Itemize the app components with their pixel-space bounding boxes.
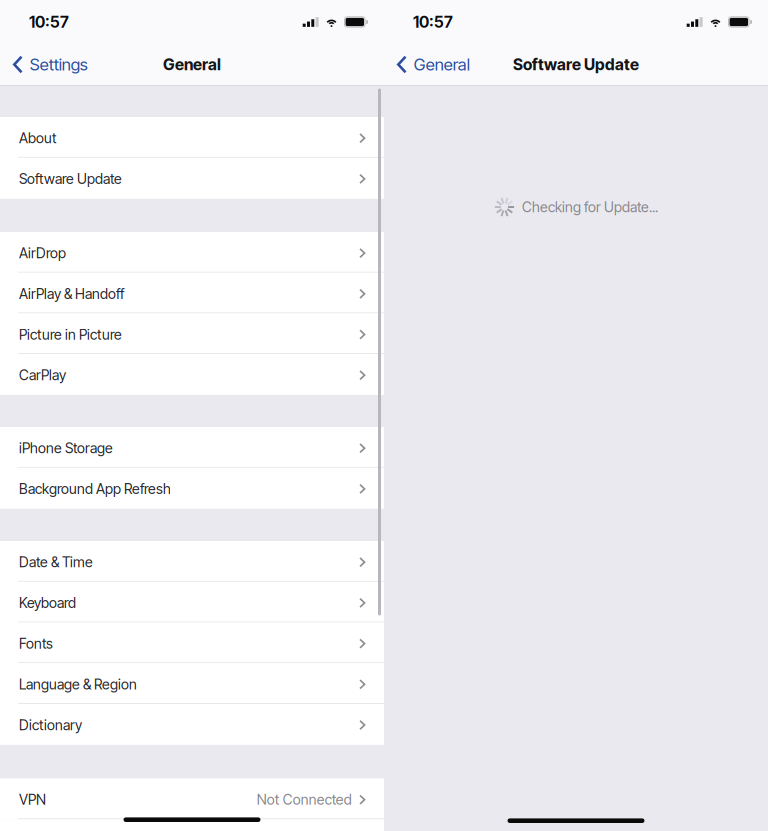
button[interactable]: VPN [0,779,384,819]
button[interactable]: Fonts [0,622,384,663]
button[interactable]: General [384,44,480,85]
staticText: AirPlay & Handoff [19,285,124,302]
staticText: Software Update [19,170,122,187]
staticText: Picture in Picture [19,326,122,343]
staticText: Background App Refresh [19,480,171,497]
button[interactable]: Background App Refresh [0,468,384,508]
staticText: 10:57 [413,12,453,32]
staticText: AirDrop [19,244,66,262]
staticText: Checking for Update... [522,198,658,215]
staticText: Language & Region [19,676,137,693]
staticText: Keyboard [19,594,76,611]
staticText: About [19,130,57,147]
staticText: VPN [19,791,46,808]
button[interactable]: Date & Time [0,541,384,582]
staticText: iPhone Storage [19,440,113,457]
staticText: Fonts [19,635,53,652]
button[interactable]: Language & Region [0,663,384,704]
staticText: General [163,55,221,74]
button[interactable]: CarPlay [0,354,384,395]
button[interactable]: Picture in Picture [0,313,384,354]
button[interactable]: Keyboard [0,582,384,622]
button[interactable]: Software Update [0,158,384,198]
button[interactable]: AirPlay & Handoff [0,273,384,313]
staticText: Software Update [513,55,639,74]
staticText: 10:57 [29,12,69,32]
button[interactable]: About [0,117,384,158]
staticText: CarPlay [19,367,66,384]
button[interactable]: Dictionary [0,704,384,745]
staticText: Date & Time [19,554,93,571]
staticText: Settings [30,54,88,75]
staticText: Dictionary [19,716,82,733]
staticText: General [414,54,470,75]
button[interactable]: iPhone Storage [0,427,384,468]
button[interactable]: Settings [0,44,98,85]
button[interactable]: AirDrop [0,232,384,273]
staticText: Not Connected [257,791,352,808]
